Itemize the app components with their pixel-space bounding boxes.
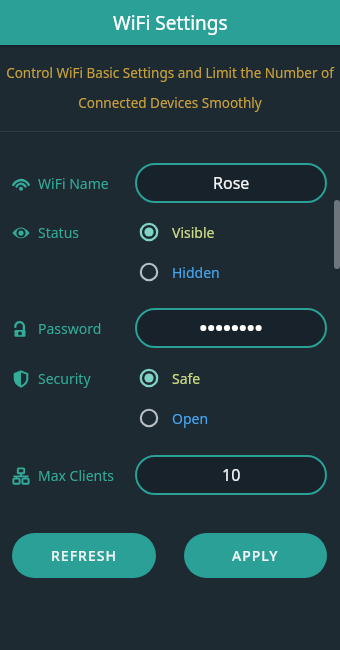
staticText: Control WiFi Basic Settings and Limit th… xyxy=(0,64,340,112)
staticText: Max Clients xyxy=(38,466,114,485)
staticText: Security xyxy=(38,369,91,388)
staticText: WiFi Settings xyxy=(113,10,228,36)
staticText: APPLY xyxy=(232,546,279,565)
button[interactable]: Hidden xyxy=(0,252,340,292)
button[interactable]: 10 xyxy=(135,455,327,495)
staticText: Rose xyxy=(213,172,250,194)
staticText: REFRESH xyxy=(51,546,117,565)
button[interactable]: Visible xyxy=(0,212,340,252)
staticText: Status xyxy=(38,223,80,242)
staticText: Password xyxy=(38,319,102,338)
button[interactable] xyxy=(135,308,327,348)
staticText: Hidden xyxy=(172,263,220,282)
staticText: 10 xyxy=(222,464,241,486)
staticText: WiFi Name xyxy=(38,174,109,193)
staticText: Safe xyxy=(172,369,201,388)
button[interactable]: REFRESH xyxy=(12,533,156,578)
button[interactable]: Safe xyxy=(0,358,340,398)
staticText: Visible xyxy=(172,223,215,242)
button[interactable]: Open xyxy=(0,398,340,438)
staticText: Open xyxy=(172,409,209,428)
button[interactable]: APPLY xyxy=(184,533,327,578)
button[interactable]: Rose xyxy=(135,163,327,203)
